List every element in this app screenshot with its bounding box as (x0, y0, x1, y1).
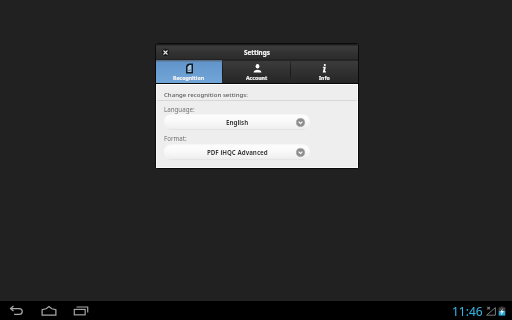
staticText: Settings (244, 48, 270, 57)
staticText: Recognition (173, 74, 205, 81)
staticText: Info (319, 74, 330, 81)
staticText: Account (246, 74, 268, 81)
staticText: Format: (164, 134, 187, 142)
staticText: English (226, 118, 249, 126)
staticText: Change recognition settings: (164, 90, 248, 98)
staticText: PDF iHQC Advanced (207, 148, 268, 156)
button[interactable]: Info (291, 60, 358, 83)
button[interactable]: PDF iHQC Advanced (164, 144, 310, 160)
button[interactable]: Account (223, 60, 290, 83)
staticText: Language: (164, 105, 195, 113)
button[interactable]: Recognition (156, 60, 222, 83)
button[interactable]: English (164, 114, 310, 130)
button[interactable]: Recent apps (71, 301, 90, 320)
button[interactable]: Home (39, 301, 58, 320)
button[interactable]: Close (160, 47, 170, 57)
staticText: 11:46 (452, 303, 483, 319)
button[interactable]: Back (7, 301, 26, 320)
